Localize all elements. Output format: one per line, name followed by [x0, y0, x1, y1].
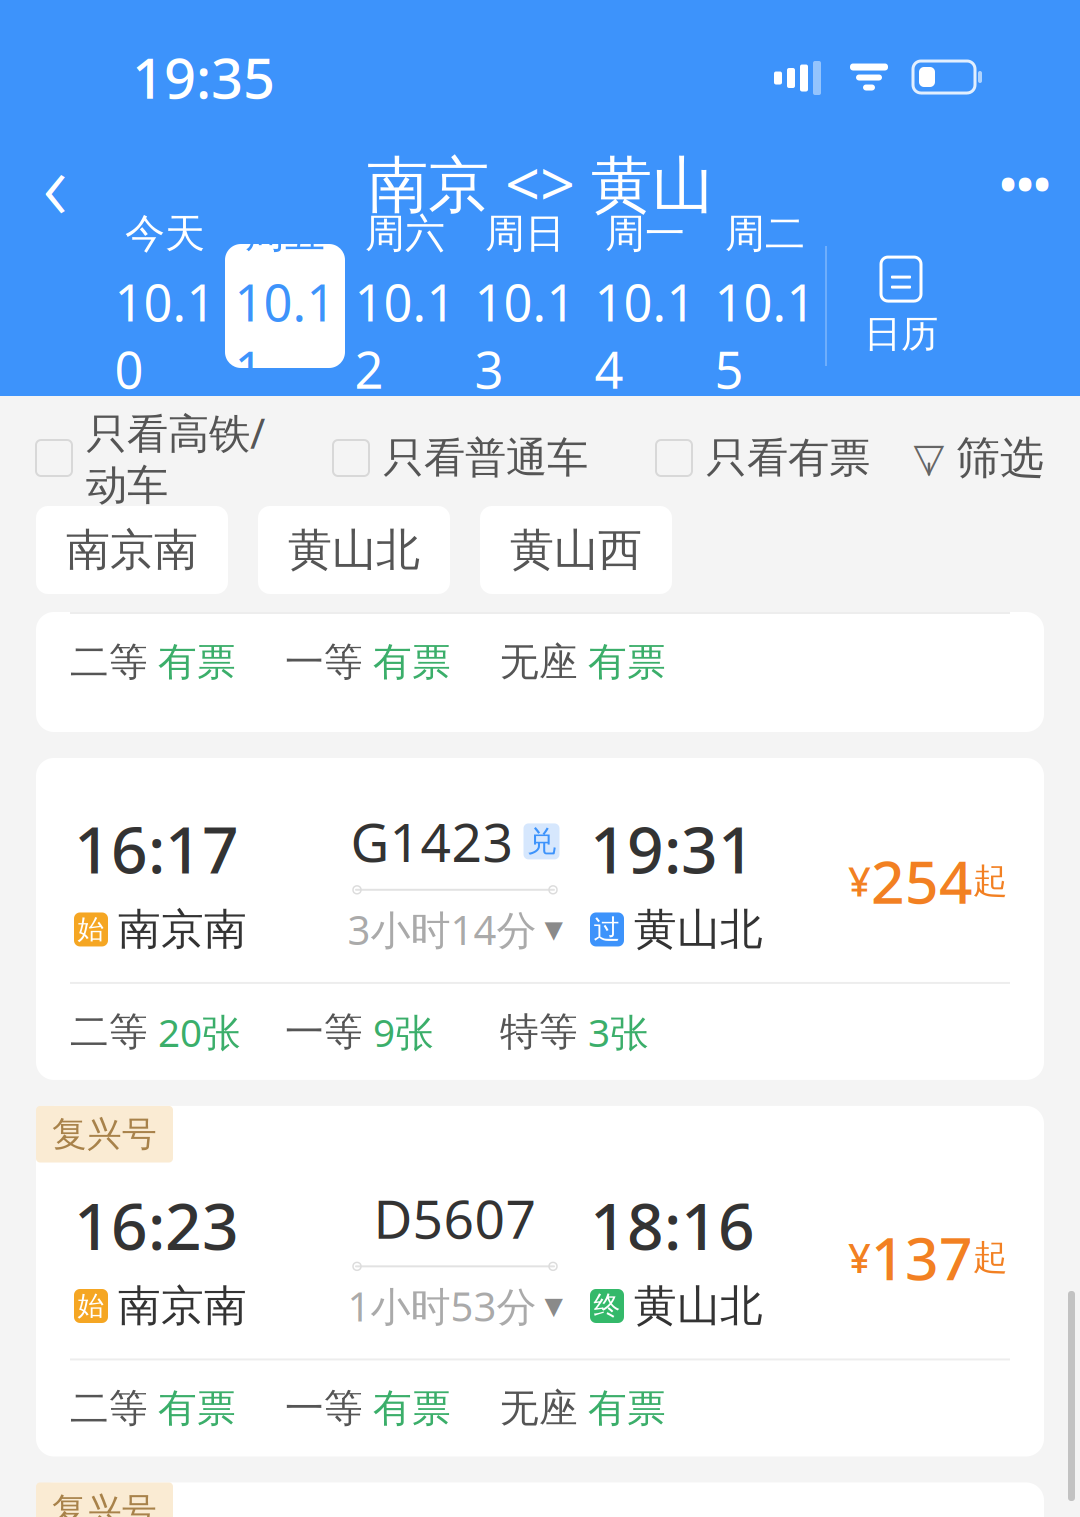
staticText: 始	[77, 1290, 104, 1322]
staticText: 10.11	[234, 268, 335, 403]
staticText: 3小时14分	[347, 903, 536, 956]
staticText: 一等	[285, 1008, 363, 1056]
staticText: 周五	[245, 209, 325, 258]
staticText: 南京南	[66, 523, 198, 577]
staticText: 16:23	[74, 1183, 239, 1268]
staticText: •••	[999, 153, 1050, 213]
staticText: 黄山西	[510, 523, 642, 577]
staticText: 终	[593, 1290, 620, 1322]
staticText: D5607	[373, 1182, 536, 1253]
staticText: G1423	[350, 806, 513, 877]
staticText: 19:35	[132, 40, 275, 114]
button[interactable]: 复兴号	[36, 1106, 1044, 1456]
staticText: 过	[593, 913, 620, 946]
staticText: ▽	[913, 435, 944, 481]
staticText: 黄山北	[288, 523, 420, 577]
staticText: 南京南	[118, 903, 247, 956]
staticText: 只看有票	[706, 433, 870, 483]
staticText: 复兴号	[52, 1489, 157, 1517]
button[interactable]: 复兴号	[36, 1482, 1044, 1517]
staticText: 10.12	[354, 268, 455, 403]
staticText: 有票	[158, 638, 236, 686]
staticText: 16:17	[74, 806, 239, 891]
staticText: 周日	[485, 209, 565, 258]
staticText: 无座	[500, 638, 578, 686]
button[interactable]: 周一	[585, 244, 705, 368]
staticText: 只看普通车	[383, 433, 588, 483]
staticText: ¥	[848, 854, 871, 907]
button[interactable]: ▽	[912, 431, 1044, 485]
staticText: 周六	[365, 209, 445, 258]
staticText: 起	[973, 860, 1008, 902]
staticText: 起	[973, 1236, 1008, 1279]
staticText: 137	[871, 1218, 973, 1296]
staticText: 周二	[725, 209, 805, 258]
button[interactable]: 今天	[105, 244, 225, 368]
staticText: 只看高铁/动车	[86, 405, 265, 511]
button[interactable]: 周六	[345, 244, 465, 368]
button[interactable]: 周二	[705, 244, 825, 368]
button[interactable]: 日历	[827, 236, 975, 376]
staticText: 黄山北	[634, 903, 763, 956]
staticText: 10.14	[594, 268, 695, 403]
staticText: 10.10	[114, 268, 215, 403]
staticText: 一等	[285, 1385, 363, 1432]
staticText: 始	[77, 913, 104, 946]
staticText: 无座	[500, 1385, 578, 1432]
button[interactable]: More	[970, 138, 1080, 228]
staticText: ¥	[848, 1231, 871, 1284]
staticText: 日历	[864, 311, 938, 357]
staticText: 19:31	[590, 806, 755, 891]
staticText: 南京 <> 黄山	[367, 142, 713, 224]
staticText: 有票	[158, 1385, 236, 1432]
staticText: 特等	[500, 1008, 578, 1056]
button[interactable]: 周五	[225, 244, 345, 368]
staticText: 1小时53分	[347, 1279, 536, 1332]
staticText: 10.13	[474, 268, 575, 403]
staticText: 二等	[70, 1385, 148, 1432]
staticText: 20张	[158, 1006, 241, 1058]
button[interactable]: 只看普通车	[333, 433, 588, 483]
staticText: ‹	[42, 119, 67, 247]
staticText: 有票	[588, 638, 666, 686]
staticText: 南京南	[118, 1280, 247, 1332]
button[interactable]: 周日	[465, 244, 585, 368]
staticText: 二等	[70, 638, 148, 686]
staticText: 9张	[373, 1006, 434, 1058]
button[interactable]: 南京南	[36, 506, 228, 594]
staticText: 黄山北	[634, 1280, 763, 1332]
staticText: ▼	[544, 1292, 562, 1319]
staticText: 今天	[125, 209, 205, 258]
staticText: 有票	[373, 638, 451, 686]
staticText: 周一	[605, 209, 685, 258]
staticText: 筛选	[956, 431, 1044, 485]
staticText: 有票	[373, 1385, 451, 1432]
button[interactable]: 16:17	[36, 758, 1044, 1080]
button[interactable]: Back	[0, 138, 110, 228]
staticText: 254	[871, 842, 973, 920]
button[interactable]: 只看有票	[656, 433, 870, 483]
staticText: 兑	[527, 823, 556, 859]
button[interactable]: 黄山北	[258, 506, 450, 594]
staticText: 复兴号	[52, 1113, 157, 1155]
staticText: 10.15	[714, 268, 815, 403]
staticText: 一等	[285, 638, 363, 686]
button[interactable]: 黄山西	[480, 506, 672, 594]
staticText: ▼	[544, 916, 562, 943]
staticText: 18:16	[590, 1183, 755, 1268]
button[interactable]: 只看高铁/动车	[36, 405, 265, 511]
staticText: 3张	[588, 1006, 649, 1058]
staticText: 二等	[70, 1008, 148, 1056]
staticText: 有票	[588, 1385, 666, 1432]
